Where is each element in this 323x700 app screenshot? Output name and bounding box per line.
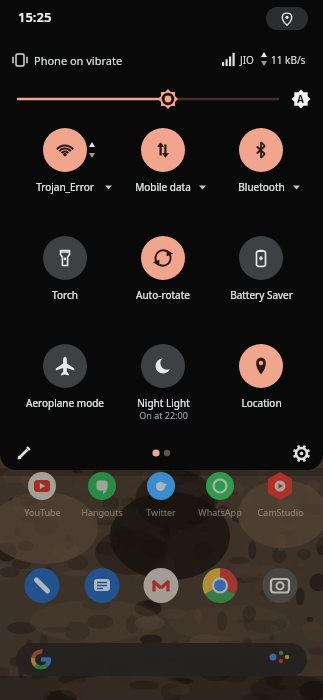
button[interactable]: [18, 126, 112, 204]
staticText: Hangouts: [81, 506, 123, 518]
button[interactable]: [264, 471, 296, 503]
button[interactable]: [214, 126, 308, 204]
staticText: On at 22:00: [139, 409, 188, 421]
button[interactable]: YouTube: [2, 506, 82, 518]
button[interactable]: [202, 568, 238, 604]
button[interactable]: [116, 234, 210, 312]
button[interactable]: [86, 471, 118, 503]
button[interactable]: [143, 568, 179, 604]
button[interactable]: [145, 471, 177, 503]
staticText: Battery Saver: [230, 288, 293, 302]
button[interactable]: [12, 441, 36, 465]
staticText: CamStudio: [257, 506, 304, 518]
button[interactable]: CamStudio: [240, 506, 320, 518]
button[interactable]: [214, 234, 308, 312]
button[interactable]: [18, 342, 112, 420]
button[interactable]: [116, 342, 210, 420]
staticText: WhatsApp: [198, 506, 242, 518]
button[interactable]: Twitter: [121, 506, 201, 518]
button[interactable]: WhatsApp: [180, 506, 260, 518]
staticText: Mobile data: [135, 180, 191, 194]
staticText: Night Light: [137, 396, 190, 410]
button[interactable]: [214, 342, 308, 420]
button[interactable]: [262, 568, 298, 604]
staticText: Aeroplane mode: [26, 396, 104, 410]
button[interactable]: [0, 85, 323, 115]
button[interactable]: [16, 643, 307, 676]
button[interactable]: [26, 471, 58, 503]
button[interactable]: [84, 568, 120, 604]
button[interactable]: [204, 471, 236, 503]
staticText: Auto-rotate: [136, 288, 190, 302]
button[interactable]: [18, 234, 112, 312]
button[interactable]: [266, 7, 308, 30]
button[interactable]: [116, 126, 210, 204]
staticText: 11 kB/s: [271, 53, 306, 67]
staticText: Location: [241, 396, 282, 410]
staticText: YouTube: [24, 506, 61, 518]
staticText: Torch: [52, 288, 78, 302]
staticText: Twitter: [146, 506, 176, 518]
staticText: Bluetooth: [238, 180, 285, 194]
staticText: Trojan_Error: [36, 180, 94, 194]
staticText: 15:25: [18, 8, 52, 26]
staticText: A: [297, 92, 304, 106]
staticText: Phone on vibrate: [34, 53, 123, 68]
button[interactable]: Hangouts: [62, 506, 142, 518]
staticText: JIO: [240, 53, 254, 67]
button[interactable]: [24, 568, 60, 604]
button[interactable]: [288, 440, 314, 466]
